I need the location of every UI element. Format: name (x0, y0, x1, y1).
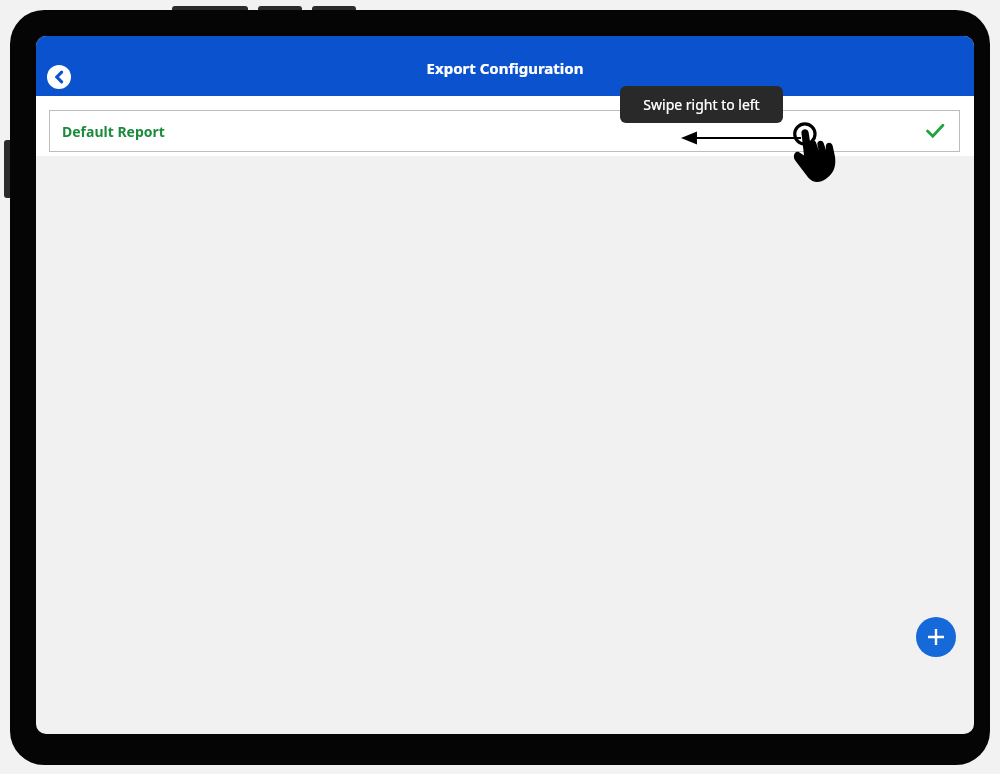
staticText: Swipe right to left (643, 95, 760, 114)
button[interactable]: Add (916, 617, 956, 657)
button[interactable]: Default Report (49, 110, 960, 152)
button[interactable]: Back (47, 65, 71, 89)
staticText: Export Configuration (36, 58, 974, 118)
staticText: Default Report (62, 122, 165, 141)
button[interactable]: Selected (924, 120, 946, 142)
